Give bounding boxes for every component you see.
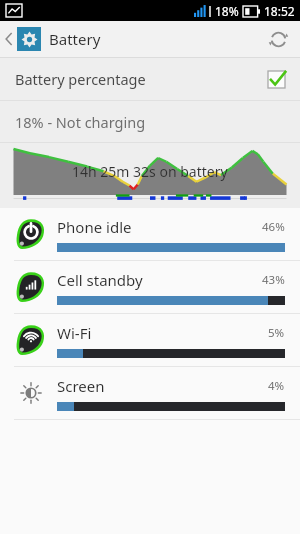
staticText: 5% — [268, 325, 285, 341]
staticText: Screen — [57, 376, 105, 396]
button[interactable]: Back — [0, 27, 101, 51]
button[interactable]: Screen — [0, 367, 300, 420]
button[interactable]: Refresh — [264, 25, 292, 53]
staticText: 14h 25m 32s on battery — [72, 162, 228, 181]
staticText: Phone idle — [57, 217, 132, 237]
other: Settings — [21, 31, 38, 48]
button[interactable]: Cell standby — [0, 261, 300, 314]
staticText: 18% — [215, 3, 239, 19]
staticText: 43% — [262, 272, 285, 288]
button[interactable]: Wi-Fi — [0, 314, 300, 367]
staticText: 18:52 — [264, 3, 295, 19]
staticText: Battery percentage — [15, 69, 146, 89]
button[interactable]: Battery percentage — [0, 58, 300, 100]
staticText: 46% — [262, 219, 285, 235]
staticText: Cell standby — [57, 270, 143, 290]
staticText: Wi-Fi — [57, 323, 92, 343]
staticText: Battery — [49, 29, 101, 49]
staticText: 18% - Not charging — [15, 112, 146, 132]
button[interactable]: Phone idle — [0, 208, 300, 261]
staticText: 4% — [268, 378, 285, 394]
other: Back — [3, 31, 15, 47]
